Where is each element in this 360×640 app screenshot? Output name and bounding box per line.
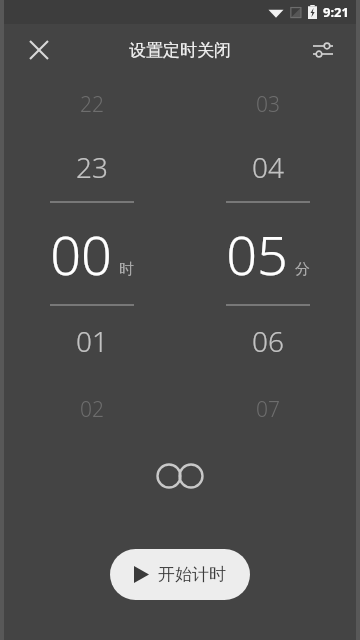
staticText: 00 — [50, 217, 112, 291]
staticText: 开始计时 — [158, 564, 226, 585]
staticText: 01 — [76, 322, 108, 360]
button[interactable]: 03 — [180, 76, 356, 446]
staticText: 23 — [76, 148, 108, 186]
button[interactable]: Close — [17, 28, 61, 72]
button[interactable]: 22 — [4, 76, 180, 446]
staticText: 22 — [80, 90, 104, 119]
button[interactable]: No time limit — [144, 454, 216, 498]
staticText: 05 — [226, 217, 288, 291]
staticText: 分 — [295, 260, 310, 279]
staticText: 04 — [252, 148, 284, 186]
button[interactable]: Settings — [301, 28, 345, 72]
staticText: 9:21 — [323, 3, 349, 21]
staticText: 06 — [252, 322, 284, 360]
button[interactable]: 开始计时 — [110, 549, 250, 600]
staticText: 设置定时关闭 — [129, 40, 231, 61]
staticText: 07 — [256, 395, 280, 424]
staticText: 时 — [119, 260, 134, 279]
staticText: 03 — [256, 90, 280, 119]
staticText: 02 — [80, 395, 104, 424]
